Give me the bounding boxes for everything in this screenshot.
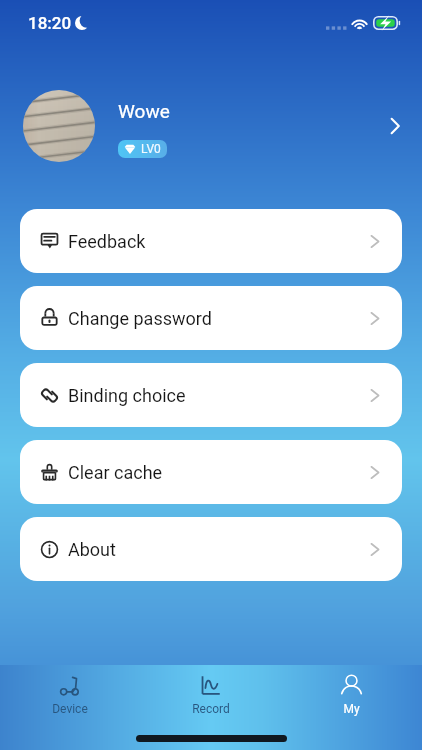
staticText: Clear cache (68, 462, 370, 483)
button[interactable]: Wowe (0, 90, 422, 162)
button[interactable]: Change password (20, 286, 402, 350)
other: Profile details (389, 117, 401, 135)
button[interactable]: Binding choice (20, 363, 402, 427)
staticText: Change password (68, 308, 370, 329)
staticText: Feedback (68, 231, 370, 252)
staticText: Record (192, 702, 230, 716)
staticText: Binding choice (68, 385, 370, 406)
staticText: About (68, 539, 370, 560)
button[interactable]: Device (0, 671, 140, 716)
staticText: Wowe (118, 100, 170, 122)
staticText: My (343, 702, 360, 716)
staticText: 18:20 (28, 13, 72, 33)
button[interactable]: About (20, 517, 402, 581)
button[interactable]: Clear cache (20, 440, 402, 504)
staticText: Device (52, 702, 88, 716)
button[interactable]: My (281, 671, 422, 716)
button[interactable]: Record (140, 671, 281, 716)
staticText: LV0 (141, 142, 161, 156)
button[interactable]: Feedback (20, 209, 402, 273)
